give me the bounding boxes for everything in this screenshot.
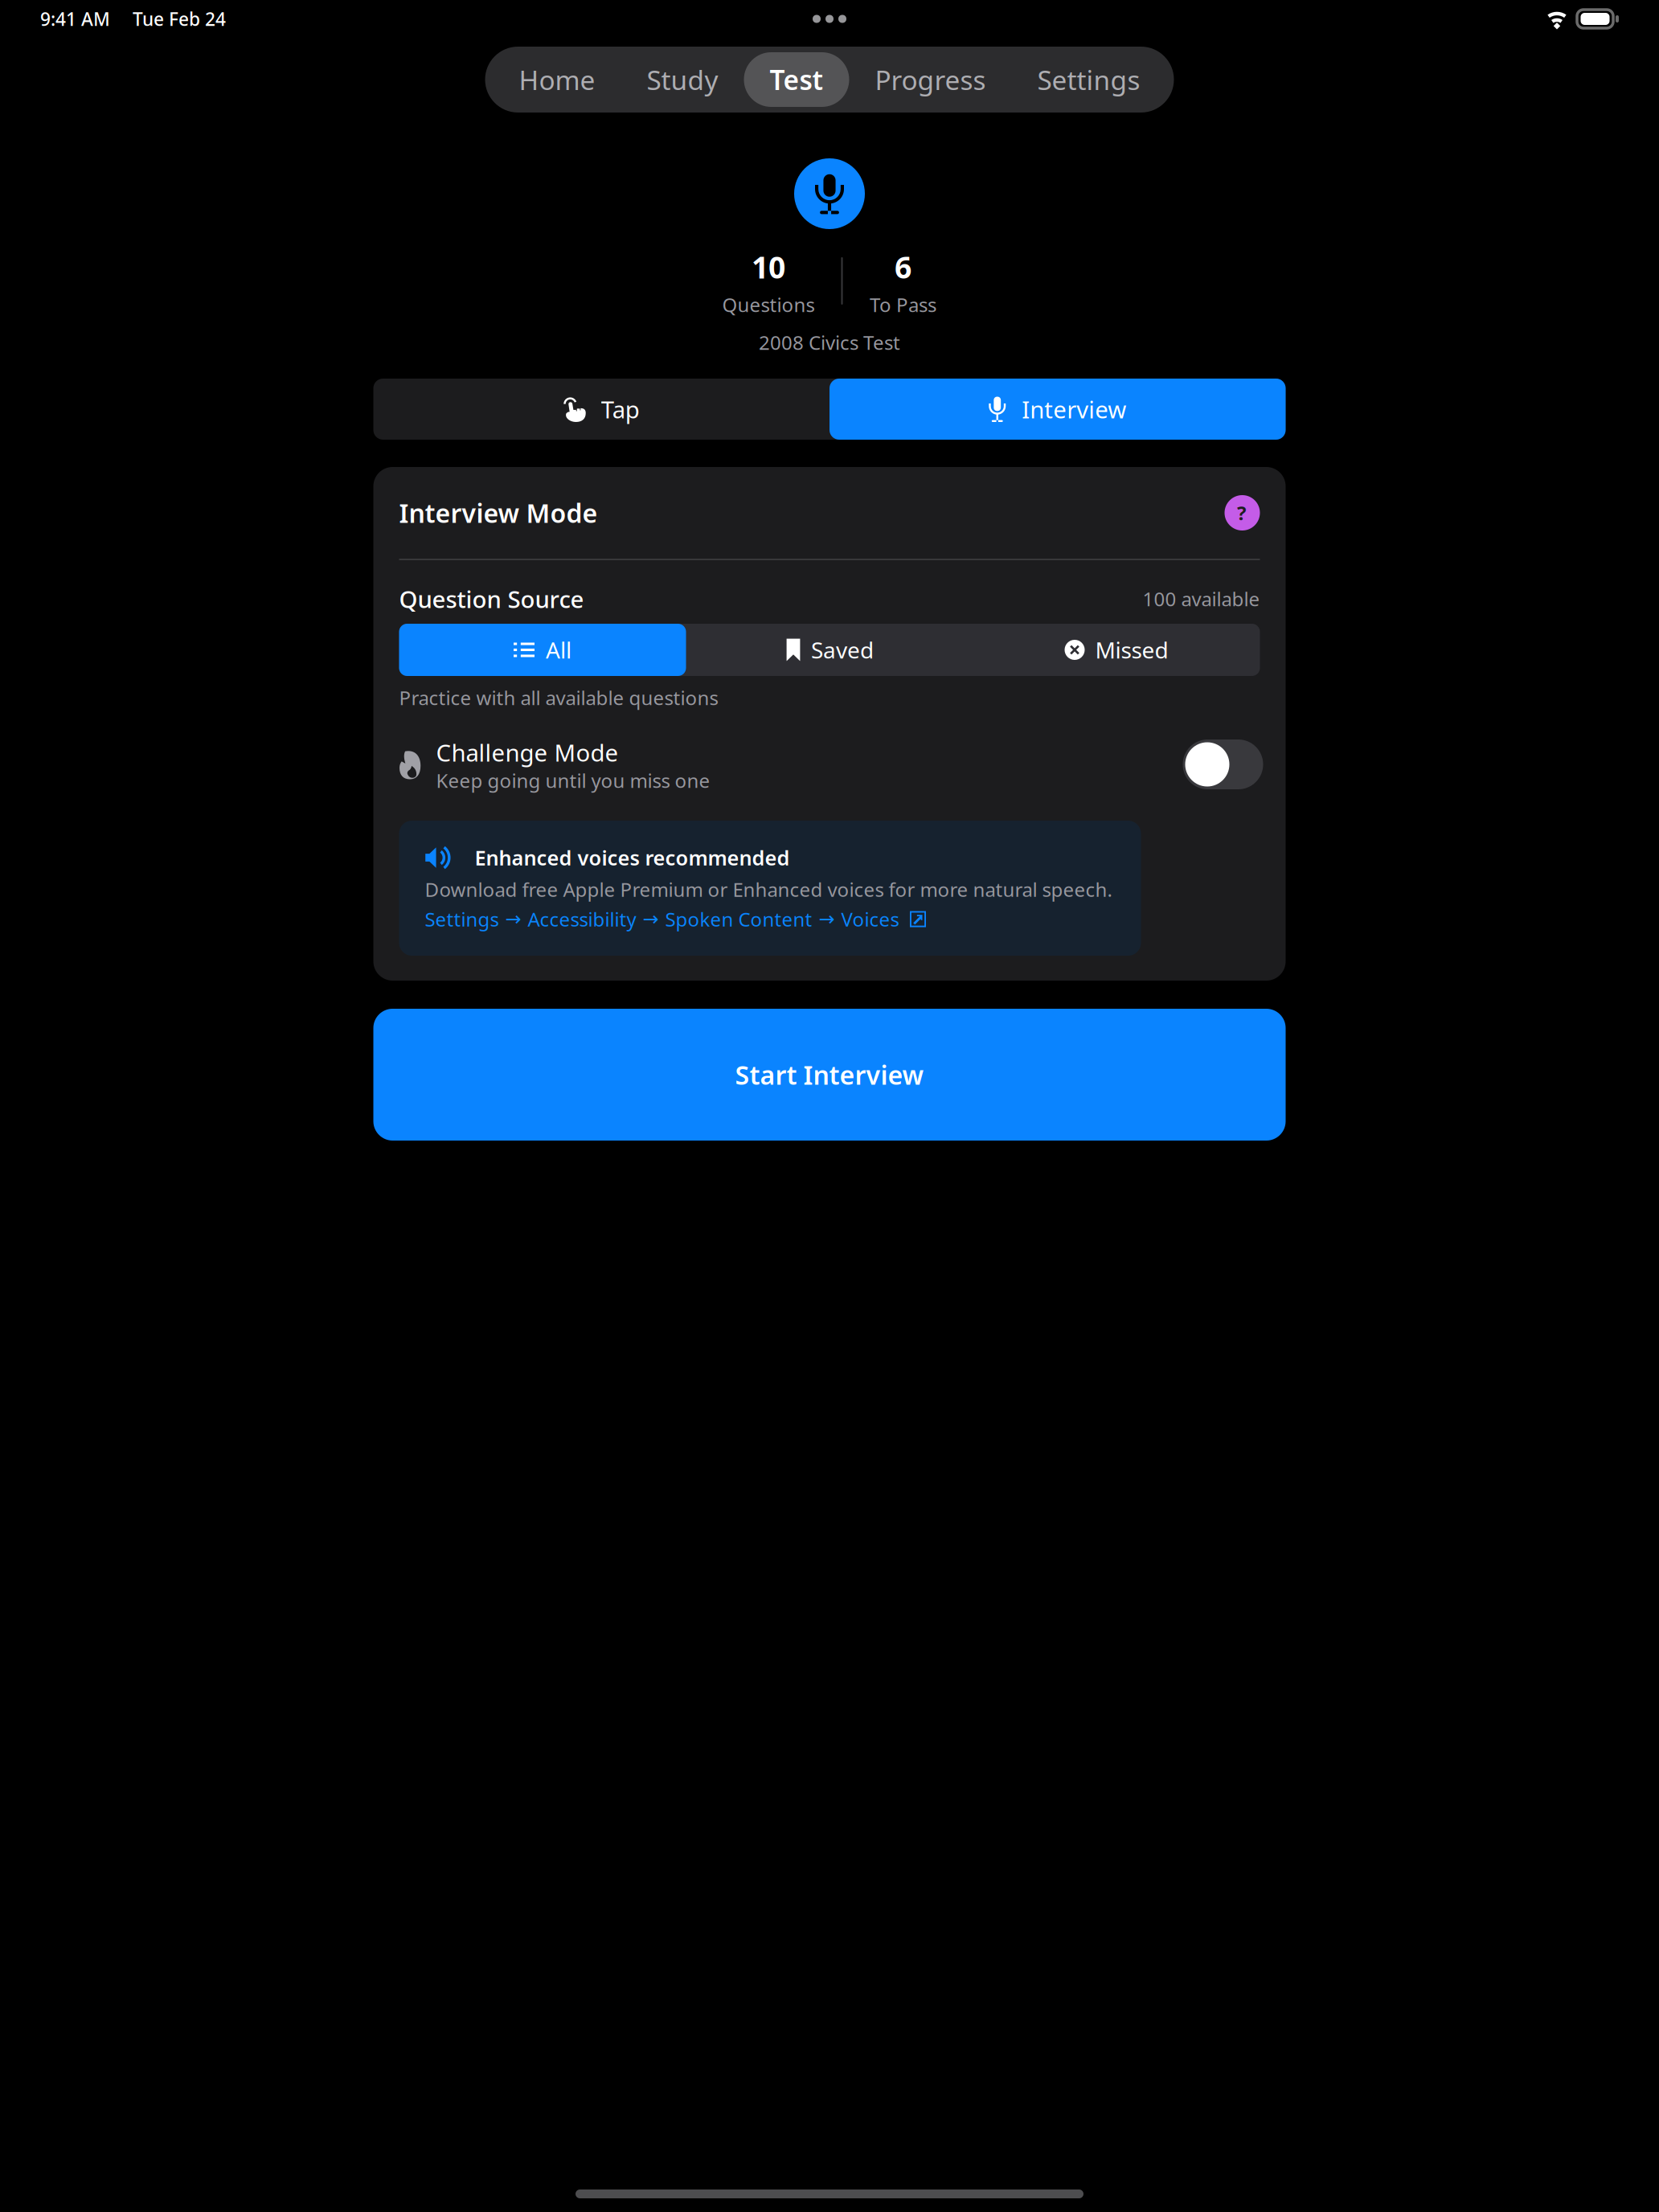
staticText: → (819, 908, 835, 930)
staticText: Voices (841, 906, 899, 932)
staticText: Practice with all available questions (399, 685, 718, 711)
button[interactable]: Tap (373, 379, 829, 440)
button[interactable]: Settings (1012, 52, 1166, 107)
staticText: To Pass (870, 292, 936, 317)
button[interactable]: All (399, 624, 686, 676)
staticText: Keep going until you miss one (436, 768, 710, 793)
button[interactable]: Study (621, 52, 744, 107)
staticText: All (546, 635, 571, 665)
staticText: Interview (1022, 393, 1126, 425)
staticText: 2008 Civics Test (759, 330, 900, 355)
staticText: Tue Feb 24 (133, 7, 226, 31)
button[interactable]: Settings (425, 904, 1115, 934)
staticText: Settings (425, 906, 499, 932)
staticText: Saved (811, 635, 874, 665)
staticText: Tap (601, 393, 640, 425)
staticText: Question Source (399, 583, 584, 614)
button[interactable]: Progress (849, 52, 1012, 107)
staticText: → (505, 908, 521, 930)
staticText: 6 (895, 247, 911, 287)
staticText: Challenge Mode (436, 737, 619, 768)
staticText: Missed (1095, 635, 1168, 665)
button[interactable]: Home (493, 52, 621, 107)
button[interactable]: About Interview Mode (1225, 495, 1260, 530)
button[interactable]: Missed (973, 624, 1260, 676)
staticText: → (643, 908, 659, 930)
staticText: Enhanced voices recommended (475, 844, 790, 871)
staticText: Spoken Content (665, 906, 812, 932)
staticText: Settings (1037, 62, 1140, 97)
staticText: Home (519, 62, 595, 97)
staticText: Study (647, 62, 718, 97)
button[interactable]: Challenge Mode, off (1183, 739, 1260, 789)
staticText: ? (1237, 500, 1246, 526)
staticText: Start Interview (735, 1058, 924, 1092)
staticText: 10 (752, 247, 785, 287)
staticText: Download free Apple Premium or Enhanced … (425, 877, 1112, 902)
staticText: 9:41 AM (40, 7, 110, 31)
staticText: Interview Mode (399, 496, 598, 530)
button[interactable]: Test (744, 52, 849, 107)
button[interactable]: Interview (829, 379, 1286, 440)
button[interactable]: Saved (686, 624, 973, 676)
button[interactable]: Start Interview (373, 1009, 1286, 1141)
staticText: 100 available (1143, 586, 1260, 612)
staticText: Questions (722, 292, 815, 317)
staticText: Progress (875, 62, 986, 97)
staticText: Accessibility (528, 906, 636, 932)
staticText: Test (770, 62, 823, 97)
